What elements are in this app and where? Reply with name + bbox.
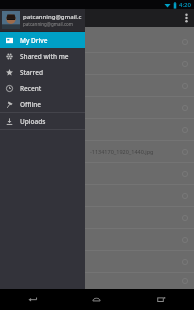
button[interactable]: -1134170_1920_1440.jpg — [0, 141, 194, 162]
button[interactable]: Back — [0, 289, 64, 310]
button[interactable] — [0, 273, 194, 289]
button[interactable] — [0, 207, 194, 228]
staticText: patcanning@gmail.com — [23, 21, 74, 27]
button[interactable]: Uploads — [0, 113, 85, 129]
button[interactable] — [0, 229, 194, 250]
button[interactable]: Shared with me — [0, 48, 85, 64]
button[interactable] — [0, 185, 194, 206]
button[interactable]: My Drive — [0, 32, 85, 48]
button[interactable]: More options — [178, 9, 194, 27]
button[interactable] — [0, 163, 194, 184]
button[interactable] — [0, 97, 194, 118]
staticText: Starred — [20, 68, 43, 77]
button[interactable] — [0, 75, 194, 96]
staticText: -1134170_1920_1440.jpg — [90, 148, 154, 155]
staticText: 4:20 — [179, 1, 191, 9]
button[interactable] — [0, 31, 194, 52]
staticText: Shared with me — [20, 52, 69, 61]
staticText: Offline — [20, 100, 42, 109]
button[interactable] — [0, 251, 194, 272]
button[interactable]: Home — [64, 289, 129, 310]
button[interactable]: Starred — [0, 64, 85, 80]
button[interactable] — [0, 53, 194, 74]
staticText: Uploads — [20, 117, 46, 126]
button[interactable]: patcanning@gmail.com — [0, 9, 85, 31]
button[interactable]: Recent — [0, 80, 85, 96]
staticText: patcanning@gmail.com — [23, 13, 85, 21]
staticText: My Drive — [33, 12, 72, 24]
button[interactable]: Open navigation drawer — [0, 9, 14, 27]
staticText: My Drive — [20, 36, 48, 45]
button[interactable]: Offline — [0, 96, 85, 112]
button[interactable]: Recent apps — [129, 289, 194, 310]
staticText: Recent — [20, 84, 42, 93]
button[interactable] — [0, 119, 194, 140]
